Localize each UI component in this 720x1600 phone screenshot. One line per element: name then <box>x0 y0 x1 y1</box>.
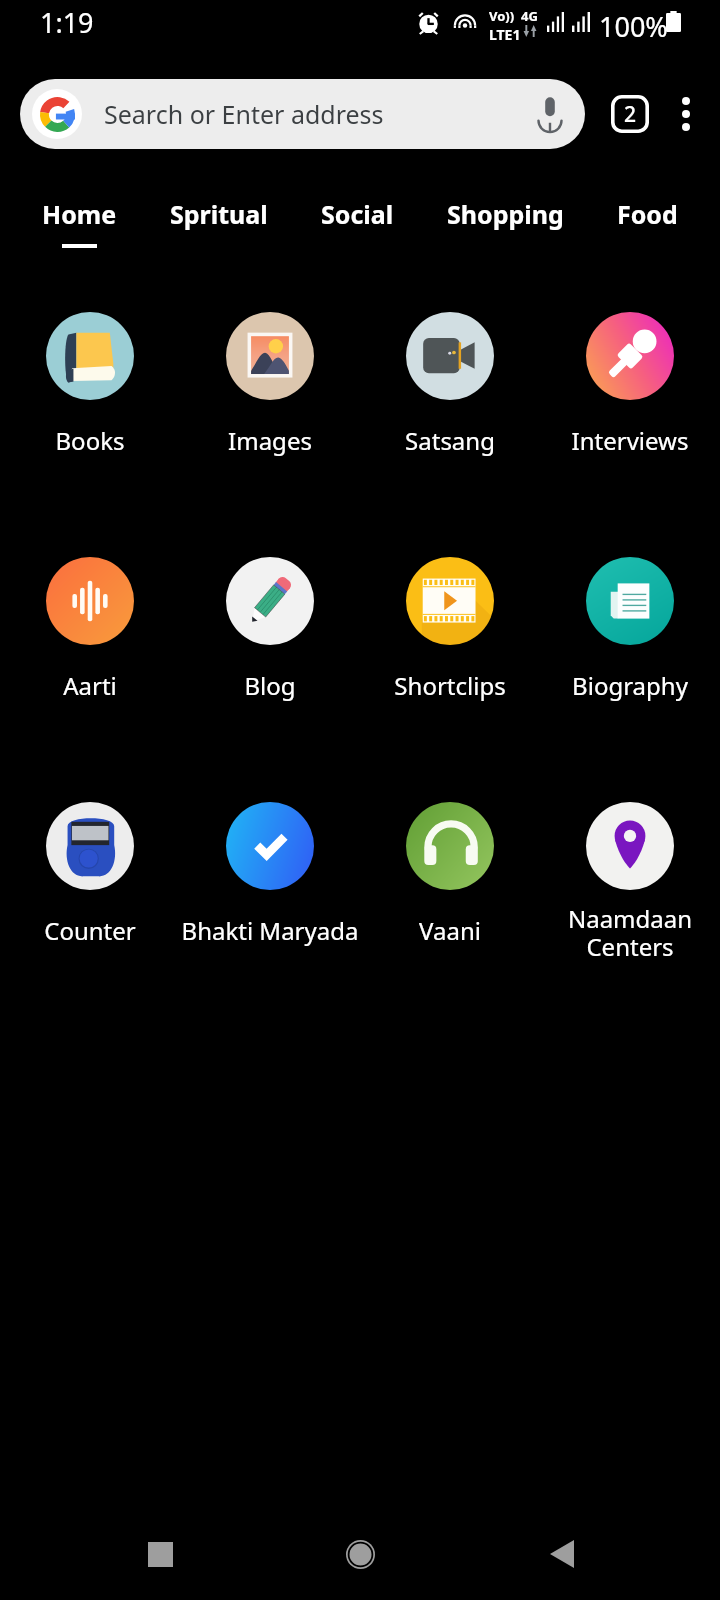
staticText: Bhakti Maryada <box>170 914 370 947</box>
button[interactable]: Food <box>611 197 684 244</box>
button[interactable]: Interviews <box>540 312 720 457</box>
button[interactable]: Vaani <box>360 802 540 947</box>
staticText: Counter <box>0 914 190 947</box>
button[interactable]: Satsang <box>360 312 540 457</box>
button[interactable]: Blog <box>180 557 360 702</box>
staticText: Aarti <box>0 669 190 702</box>
staticText: Books <box>0 424 190 457</box>
button[interactable]: Shopping <box>441 197 570 244</box>
button[interactable]: Counter <box>0 802 180 947</box>
staticText: 2 <box>624 100 637 129</box>
button[interactable]: More options <box>664 92 708 136</box>
staticText: Shortclips <box>350 669 550 702</box>
button[interactable]: Social <box>315 197 400 244</box>
staticText: Social <box>321 197 394 231</box>
staticText: Vo)) <box>489 7 515 25</box>
button[interactable]: Search or Enter address <box>20 79 585 149</box>
button[interactable]: Bhakti Maryada <box>180 802 360 947</box>
staticText: Biography <box>530 669 720 702</box>
staticText: Search or Enter address <box>104 97 384 131</box>
button[interactable]: Naamdaan Centers <box>540 802 720 947</box>
button[interactable]: Open tabs: 2 <box>611 95 649 133</box>
button[interactable]: Shortclips <box>360 557 540 702</box>
staticText: 4G <box>521 7 538 25</box>
button[interactable]: Recent apps <box>130 1524 190 1584</box>
staticText: 1:19 <box>40 4 94 41</box>
staticText: Shopping <box>447 197 564 231</box>
button[interactable]: Books <box>0 312 180 457</box>
staticText: Blog <box>170 669 370 702</box>
staticText: Home <box>42 197 117 231</box>
staticText: Interviews <box>530 424 720 457</box>
button[interactable]: Biography <box>540 557 720 702</box>
button[interactable]: Home <box>36 197 123 248</box>
staticText: LTE1 <box>489 25 521 44</box>
button[interactable]: Voice search <box>527 91 573 137</box>
button[interactable]: Home <box>330 1524 390 1584</box>
staticText: Satsang <box>350 424 550 457</box>
button[interactable]: Aarti <box>0 557 180 702</box>
staticText: Naamdaan Centers <box>555 902 705 959</box>
button[interactable]: Back <box>532 1524 592 1584</box>
staticText: Vaani <box>350 914 550 947</box>
button[interactable]: Images <box>180 312 360 457</box>
staticText: Images <box>170 424 370 457</box>
staticText: Food <box>617 197 678 231</box>
staticText: Spritual <box>170 197 268 231</box>
staticText: 100% <box>599 8 668 45</box>
button[interactable]: Spritual <box>164 197 274 244</box>
